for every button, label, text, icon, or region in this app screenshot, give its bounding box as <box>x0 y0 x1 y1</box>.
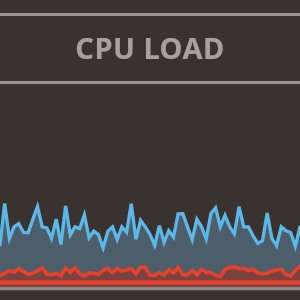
button[interactable] <box>0 0 300 300</box>
button[interactable]: CPU load graph <box>0 0 300 300</box>
button[interactable]: CPU LOAD <box>0 16 300 81</box>
staticText: CPU LOAD <box>75 28 225 67</box>
